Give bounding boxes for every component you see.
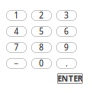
button[interactable]: ENTER (57, 73, 83, 84)
staticText: 8 (39, 42, 44, 53)
button[interactable]: 2 (31, 10, 52, 21)
staticText: . (65, 58, 67, 69)
staticText: 7 (14, 42, 19, 53)
staticText: 3 (64, 10, 69, 21)
staticText: 9 (64, 42, 69, 53)
staticText: 4 (14, 26, 19, 37)
button[interactable]: 0 (31, 58, 52, 69)
staticText: 1 (14, 10, 19, 21)
button[interactable]: 7 (6, 42, 27, 53)
staticText: 5 (39, 26, 44, 37)
button[interactable]: 8 (31, 42, 52, 53)
button[interactable]: . (56, 58, 77, 69)
button[interactable]: 9 (56, 42, 77, 53)
staticText: 0 (39, 58, 44, 69)
button[interactable]: 4 (6, 26, 27, 37)
staticText: ENTER (57, 73, 82, 84)
staticText: − (14, 58, 19, 69)
staticText: 2 (39, 10, 44, 21)
button[interactable]: 3 (56, 10, 77, 21)
button[interactable]: 5 (31, 26, 52, 37)
button[interactable]: 6 (56, 26, 77, 37)
button[interactable]: − (6, 58, 27, 69)
button[interactable]: 1 (6, 10, 27, 21)
staticText: 6 (64, 26, 69, 37)
